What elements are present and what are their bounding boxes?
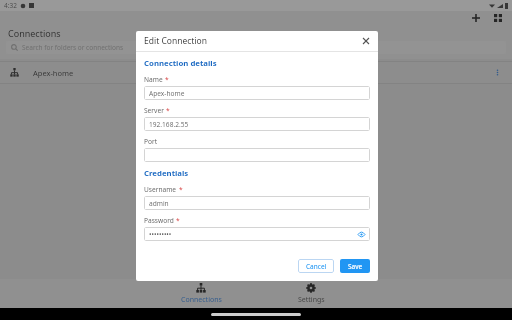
button[interactable]: Save — [340, 259, 370, 273]
staticText: Username — [144, 185, 177, 194]
button[interactable]: Close — [360, 35, 372, 47]
button[interactable]: Search for folders or connections — [6, 41, 506, 54]
staticText: Edit Connection — [144, 35, 207, 47]
staticText: 4:32 — [4, 1, 17, 10]
staticText: Settings — [298, 295, 325, 305]
staticText: * — [165, 75, 169, 84]
staticText: Connections — [8, 27, 61, 39]
staticText: Connection details — [144, 58, 217, 69]
button[interactable]: Add connection — [470, 12, 482, 24]
staticText: ••••••••• — [149, 230, 172, 239]
button[interactable]: Settings — [276, 281, 346, 307]
staticText: Apex-home — [149, 89, 185, 98]
button[interactable] — [144, 148, 370, 162]
button[interactable]: ••••••••• — [144, 227, 370, 241]
staticText: Password — [144, 216, 174, 225]
button[interactable]: Connections — [166, 281, 236, 307]
staticText: * — [179, 185, 183, 194]
staticText: * — [166, 106, 170, 115]
button[interactable]: admin — [144, 196, 370, 210]
staticText: Apex-home — [33, 68, 74, 78]
staticText: Connections — [181, 295, 222, 305]
staticText: Save — [348, 262, 363, 271]
staticText: 192.168.2.55 — [149, 120, 189, 129]
staticText: Port — [144, 137, 158, 146]
staticText: Cancel — [306, 262, 327, 271]
button[interactable]: Cancel — [298, 259, 334, 273]
button[interactable]: Apex-home — [144, 86, 370, 100]
staticText: admin — [149, 199, 169, 208]
staticText: Name — [144, 75, 163, 84]
staticText: Search for folders or connections — [22, 43, 124, 52]
button[interactable]: Show password — [356, 229, 366, 239]
button[interactable]: Grid view — [492, 12, 504, 24]
staticText: Credentials — [144, 168, 189, 179]
staticText: Server — [144, 106, 164, 115]
staticText: * — [176, 216, 180, 225]
button[interactable]: 192.168.2.55 — [144, 117, 370, 131]
button[interactable]: Apex-home — [0, 62, 512, 83]
